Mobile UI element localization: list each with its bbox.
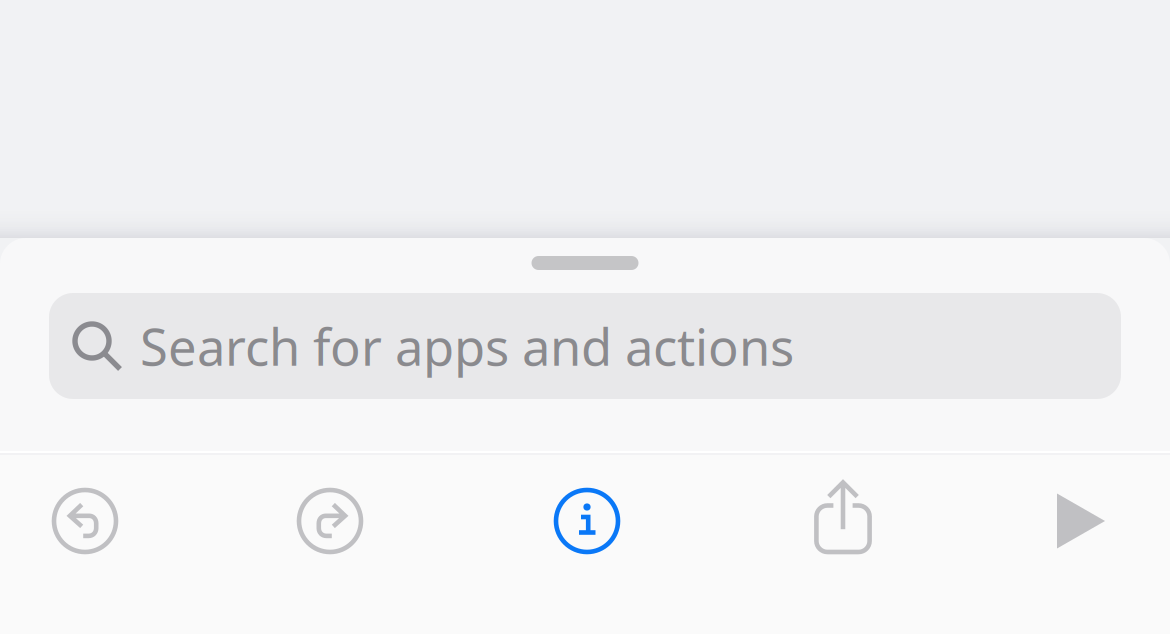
button[interactable]: Redo xyxy=(270,461,390,581)
staticText: Search for apps and actions xyxy=(140,312,794,380)
button[interactable]: Share xyxy=(783,461,903,581)
button[interactable]: Undo xyxy=(25,461,145,581)
button[interactable]: Run shortcut xyxy=(1021,461,1141,581)
button[interactable]: Search for apps and actions xyxy=(49,293,1121,399)
button[interactable]: Details xyxy=(527,461,647,581)
